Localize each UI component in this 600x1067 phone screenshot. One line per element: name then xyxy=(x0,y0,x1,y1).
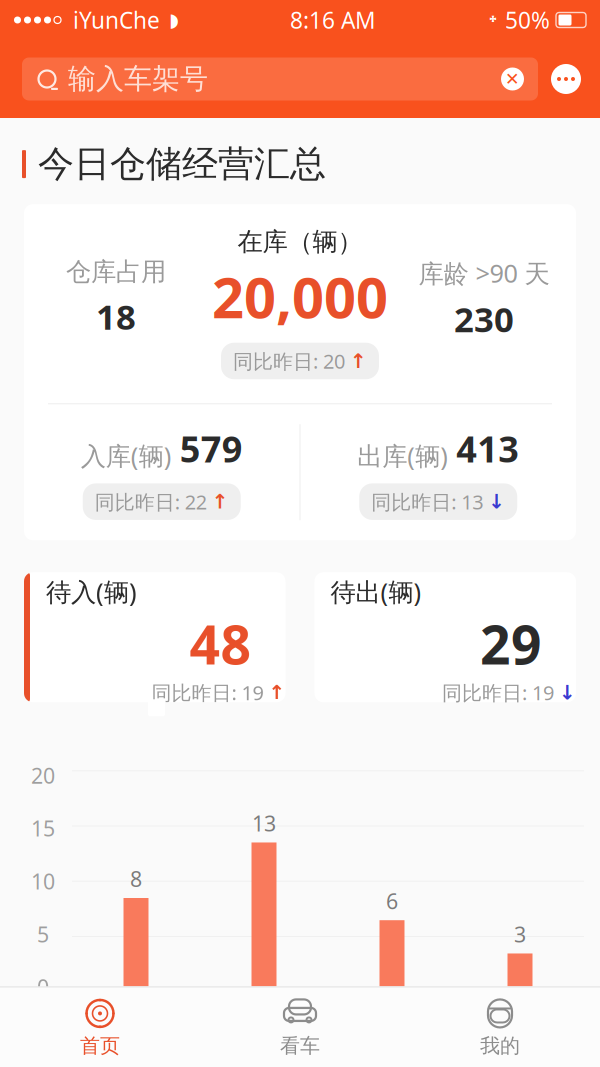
staticText: 413 xyxy=(456,425,519,472)
staticText: 待入(辆) xyxy=(46,575,137,608)
staticText: 仓库 xyxy=(112,998,160,1027)
button[interactable]: 待出(辆) xyxy=(314,572,576,702)
staticText: 同比昨日: xyxy=(95,488,180,515)
staticText: 待出(辆) xyxy=(330,575,421,608)
staticText: 20 xyxy=(31,761,55,790)
staticText: 8 xyxy=(130,865,142,893)
staticText: 同比昨日: xyxy=(151,679,236,706)
staticText: 579 xyxy=(180,425,243,472)
staticText: ↑ xyxy=(268,681,285,704)
button[interactable]: Messages xyxy=(538,54,594,104)
staticText: ◗ xyxy=(169,9,179,31)
staticText: 8:16 AM xyxy=(290,5,376,35)
button[interactable]: 看车 xyxy=(200,992,400,1063)
staticText: 业务 xyxy=(496,998,544,1027)
staticText: 3 xyxy=(514,920,526,948)
staticText: 13 xyxy=(461,488,483,515)
staticText: 出库(辆) xyxy=(357,439,448,472)
button[interactable]: 首页 xyxy=(0,992,200,1063)
staticText: ↑ xyxy=(212,490,229,513)
staticText: 在库（辆） xyxy=(237,226,362,257)
staticText: 50% xyxy=(505,5,550,35)
staticText: 10 xyxy=(31,867,55,895)
staticText: 6 xyxy=(386,887,398,915)
staticText: 首页 xyxy=(80,1033,120,1058)
staticText: ↑ xyxy=(350,350,367,372)
button[interactable]: 待入(辆) xyxy=(24,572,285,702)
staticText: 20,000 xyxy=(212,259,388,334)
staticText: 20 xyxy=(323,348,345,374)
staticText: 19 xyxy=(241,679,263,706)
staticText: 5 xyxy=(37,920,49,948)
staticText: ↓ xyxy=(488,490,505,513)
staticText: 19 xyxy=(532,679,554,706)
staticText: 同比昨日: xyxy=(442,679,527,706)
staticText: 22 xyxy=(185,488,207,515)
staticText: 13 xyxy=(252,809,276,837)
staticText: 看车 xyxy=(280,1033,320,1058)
staticText: 入库(辆) xyxy=(81,439,172,472)
staticText: 18 xyxy=(96,293,136,339)
staticText: ↓ xyxy=(559,681,576,704)
staticText: ᛭ xyxy=(487,10,499,30)
staticText: 15 xyxy=(31,814,55,842)
staticText: 同比昨日: xyxy=(233,348,318,374)
staticText: ✕ xyxy=(505,69,520,89)
staticText: 仓库占用 xyxy=(66,256,166,287)
staticText: 库龄 >90 天 xyxy=(418,256,549,290)
staticText: 29 xyxy=(480,608,542,679)
staticText: 48 xyxy=(189,608,251,679)
staticText: 品牌 xyxy=(240,998,288,1027)
staticText: iYunChe xyxy=(73,5,160,35)
staticText: 0 xyxy=(37,973,49,1001)
staticText: 我的 xyxy=(480,1033,520,1058)
staticText: 输入车架号 xyxy=(68,62,208,96)
button[interactable]: 我的 xyxy=(400,992,600,1063)
staticText: 同比昨日: xyxy=(371,488,456,515)
staticText: 230 xyxy=(454,296,514,342)
button[interactable]: 输入车架号 xyxy=(22,57,538,100)
staticText: 今日仓储经营汇总 xyxy=(38,142,326,186)
